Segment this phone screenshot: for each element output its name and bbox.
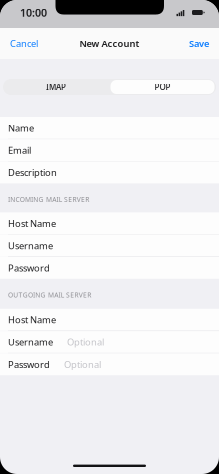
button[interactable]: Description (0, 162, 219, 183)
button[interactable]: Cancel (0, 28, 44, 59)
staticText: Username (8, 336, 53, 348)
button[interactable]: Username (0, 235, 219, 256)
staticText: POP (154, 82, 170, 92)
staticText: IMAP (46, 82, 66, 92)
staticText: Host Name (8, 313, 56, 326)
button[interactable]: Username (0, 331, 219, 353)
staticText: 10:00 (20, 5, 47, 20)
staticText: INCOMING MAIL SERVER (8, 195, 89, 204)
staticText: Description (8, 166, 57, 179)
staticText: Username (8, 239, 53, 252)
staticText: Name (8, 122, 34, 134)
button[interactable]: Email (0, 139, 219, 161)
staticText: New Account (79, 37, 139, 50)
staticText: Host Name (8, 217, 56, 229)
staticText: Password (8, 358, 50, 370)
staticText: OUTGOING MAIL SERVER (8, 290, 91, 299)
button[interactable]: Save (183, 28, 219, 59)
staticText: Email (8, 144, 31, 156)
staticText: Cancel (10, 37, 38, 50)
staticText: Optional (67, 336, 104, 348)
button[interactable]: Host Name (0, 309, 219, 331)
button[interactable]: Password (0, 257, 219, 279)
button[interactable]: Host Name (0, 212, 219, 234)
button[interactable]: Password (0, 353, 219, 375)
staticText: Optional (64, 358, 101, 370)
button[interactable]: POP (109, 79, 216, 95)
staticText: Save (189, 37, 209, 50)
button[interactable]: IMAP (3, 79, 109, 95)
button[interactable]: Name (0, 117, 219, 139)
staticText: Password (8, 262, 50, 274)
